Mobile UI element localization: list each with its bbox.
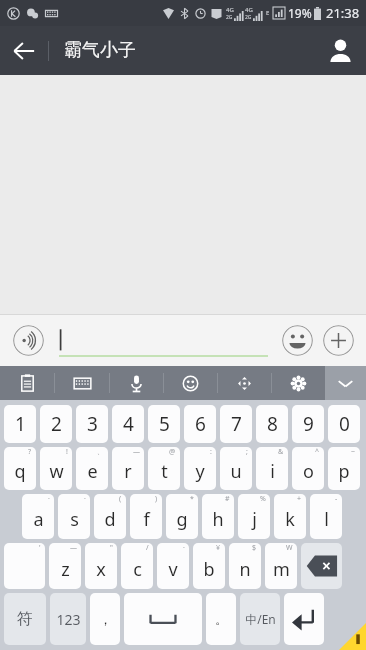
staticText: @ bbox=[169, 447, 176, 457]
button[interactable]: & bbox=[256, 447, 288, 490]
staticText: c bbox=[133, 557, 142, 582]
staticText: — bbox=[133, 447, 140, 457]
button[interactable]: W bbox=[265, 543, 297, 589]
button[interactable]: Voice input bbox=[13, 325, 44, 356]
button[interactable]: Move cursor bbox=[218, 366, 271, 400]
button[interactable]: 、 bbox=[76, 447, 108, 490]
button[interactable]: Back bbox=[0, 27, 48, 75]
staticText: w bbox=[49, 459, 64, 484]
staticText: & bbox=[278, 447, 284, 457]
button[interactable]: % bbox=[238, 494, 270, 539]
button[interactable]: 0 bbox=[328, 405, 360, 443]
staticText: 4G bbox=[245, 6, 253, 14]
button[interactable]: Settings bbox=[272, 366, 325, 400]
button[interactable]: ¥ bbox=[193, 543, 225, 589]
button[interactable]: * bbox=[166, 494, 198, 539]
button[interactable]: ^ bbox=[292, 447, 324, 490]
button[interactable]: More bbox=[323, 325, 354, 356]
staticText: o bbox=[303, 459, 314, 484]
staticText: ~ bbox=[351, 447, 356, 457]
staticText: y bbox=[195, 459, 205, 484]
button[interactable]: / bbox=[121, 543, 153, 589]
staticText: 21:38 bbox=[326, 4, 360, 22]
staticText: f bbox=[143, 507, 150, 532]
button[interactable]: ) bbox=[130, 494, 162, 539]
staticText: 123 bbox=[56, 610, 81, 629]
staticText: k bbox=[285, 507, 295, 532]
button[interactable]: - bbox=[310, 494, 342, 539]
button[interactable]: " bbox=[85, 543, 117, 589]
button[interactable]: 2 bbox=[40, 405, 72, 443]
staticText: v bbox=[168, 557, 178, 582]
button[interactable]: — bbox=[112, 447, 144, 490]
staticText: : bbox=[210, 447, 212, 457]
staticText: # bbox=[225, 494, 230, 504]
button[interactable]: 8 bbox=[256, 405, 288, 443]
button[interactable]: 符 bbox=[4, 593, 46, 645]
staticText: t bbox=[161, 459, 168, 484]
staticText: E bbox=[266, 9, 270, 17]
button[interactable]: : bbox=[184, 447, 216, 490]
button[interactable]: 7 bbox=[220, 405, 252, 443]
button[interactable] bbox=[284, 593, 324, 645]
button[interactable]: 。 bbox=[206, 593, 236, 645]
button[interactable]: Emoji keyboard bbox=[164, 366, 217, 400]
button[interactable]: 9 bbox=[292, 405, 324, 443]
button[interactable]: ; bbox=[220, 447, 252, 490]
staticText: b bbox=[203, 557, 215, 582]
button[interactable]: @ bbox=[148, 447, 180, 490]
button[interactable]: 123 bbox=[50, 593, 86, 645]
staticText: 4 bbox=[123, 411, 134, 437]
button[interactable] bbox=[59, 324, 268, 357]
button[interactable]: — bbox=[49, 543, 81, 589]
button[interactable]: # bbox=[202, 494, 234, 539]
button[interactable]: ~ bbox=[328, 447, 360, 490]
button[interactable]: Emoji bbox=[282, 325, 313, 356]
button[interactable]: ? bbox=[4, 447, 36, 490]
staticText: e bbox=[87, 459, 98, 484]
staticText: · bbox=[84, 494, 86, 504]
button[interactable]: Keyboard layout bbox=[55, 366, 109, 400]
button[interactable]: · bbox=[157, 543, 189, 589]
button[interactable]: 4 bbox=[112, 405, 144, 443]
staticText: / bbox=[146, 543, 149, 553]
button[interactable]: 3 bbox=[76, 405, 108, 443]
button[interactable]: 1 bbox=[4, 405, 36, 443]
staticText: % bbox=[260, 494, 266, 504]
button[interactable]: Clipboard bbox=[0, 366, 54, 400]
staticText: 中/En bbox=[245, 611, 276, 627]
button[interactable]: · bbox=[22, 494, 54, 539]
staticText: j bbox=[252, 507, 257, 532]
staticText: ? bbox=[28, 447, 32, 457]
staticText: — bbox=[70, 543, 77, 553]
staticText: 5 bbox=[159, 411, 170, 437]
staticText: g bbox=[176, 507, 188, 532]
staticText: ' bbox=[39, 543, 41, 553]
button[interactable]: ， bbox=[90, 593, 120, 645]
button[interactable]: ( bbox=[94, 494, 126, 539]
button[interactable]: ' bbox=[4, 543, 45, 589]
staticText: 0 bbox=[339, 411, 350, 437]
staticText: i bbox=[270, 459, 275, 484]
staticText: m bbox=[273, 557, 290, 582]
button[interactable]: $ bbox=[229, 543, 261, 589]
button[interactable]: + bbox=[274, 494, 306, 539]
button[interactable]: 5 bbox=[148, 405, 180, 443]
staticText: 符 bbox=[17, 609, 33, 629]
button[interactable]: ! bbox=[40, 447, 72, 490]
staticText: 4G bbox=[226, 6, 234, 14]
button[interactable]: 中/En bbox=[240, 593, 280, 645]
button[interactable]: 6 bbox=[184, 405, 216, 443]
staticText: h bbox=[212, 507, 224, 532]
button[interactable]: · bbox=[58, 494, 90, 539]
button[interactable]: Hide keyboard bbox=[325, 366, 366, 400]
staticText: n bbox=[239, 557, 251, 582]
staticText: * bbox=[190, 494, 194, 504]
button[interactable] bbox=[301, 543, 342, 589]
button[interactable] bbox=[124, 593, 202, 645]
button[interactable]: Contact profile bbox=[314, 26, 366, 75]
staticText: ) bbox=[155, 494, 158, 504]
button[interactable]: Voice typing bbox=[110, 366, 163, 400]
staticText: ， bbox=[99, 611, 112, 627]
staticText: 6 bbox=[195, 411, 206, 437]
